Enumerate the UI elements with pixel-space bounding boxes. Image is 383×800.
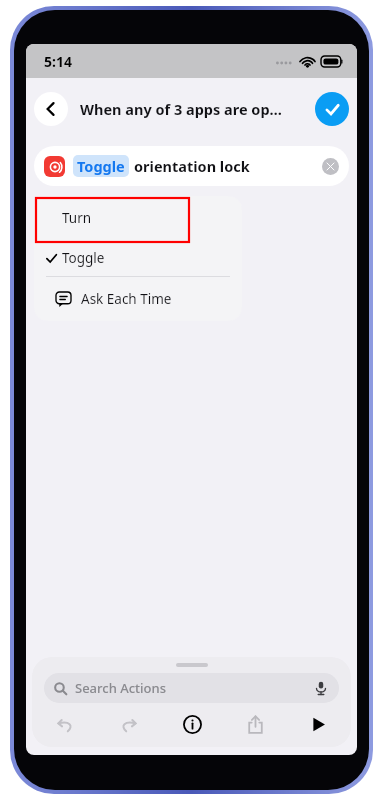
staticText: Search Actions — [75, 679, 313, 697]
button[interactable]: Search Actions — [44, 673, 339, 703]
button[interactable]: Turn — [34, 196, 242, 240]
staticText: 5:14 — [44, 52, 72, 71]
button[interactable]: Run — [301, 707, 335, 741]
button[interactable]: Toggle — [34, 240, 242, 276]
staticText: Toggle — [62, 249, 105, 267]
button[interactable]: Remove action — [322, 158, 339, 175]
button[interactable]: Back — [34, 92, 68, 126]
staticText: orientation lock — [134, 156, 322, 176]
button[interactable]: Ask Each Time — [34, 277, 242, 321]
staticText: Turn — [62, 209, 92, 227]
staticText: Ask Each Time — [81, 290, 172, 308]
button[interactable]: Undo — [48, 707, 82, 741]
button[interactable]: Redo — [111, 707, 145, 741]
button[interactable]: Info — [175, 707, 209, 741]
button[interactable]: Toggle — [34, 146, 349, 186]
button[interactable]: Done — [315, 92, 349, 126]
staticText: Toggle — [77, 156, 125, 176]
button[interactable]: Voice input — [313, 680, 329, 696]
staticText: When any of 3 apps are op… — [80, 99, 307, 119]
button[interactable]: Share — [238, 707, 272, 741]
